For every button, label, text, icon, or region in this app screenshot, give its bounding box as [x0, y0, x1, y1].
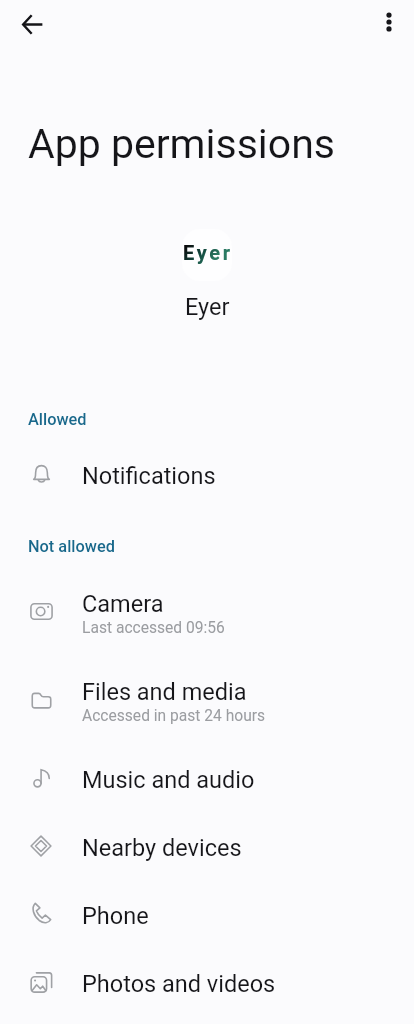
staticText: Nearby devices: [82, 834, 242, 862]
staticText: Last accessed 09:56: [82, 619, 225, 637]
staticText: Photos and videos: [82, 970, 276, 998]
staticText: Eyer: [185, 293, 230, 321]
button[interactable]: Camera: [0, 573, 414, 647]
button[interactable]: Music and audio: [0, 749, 414, 803]
staticText: Music and audio: [82, 766, 255, 794]
button[interactable]: Notifications: [0, 445, 414, 499]
staticText: Phone: [82, 902, 149, 930]
staticText: Camera: [82, 590, 164, 618]
staticText: Accessed in past 24 hours: [82, 707, 266, 725]
button[interactable]: Phone: [0, 885, 414, 939]
button[interactable]: More options: [373, 6, 405, 38]
staticText: Notifications: [82, 462, 216, 490]
staticText: Allowed: [28, 410, 87, 429]
staticText: App permissions: [28, 120, 336, 168]
staticText: Eyer: [183, 241, 232, 264]
button[interactable]: Photos and videos: [0, 953, 414, 1007]
staticText: Not allowed: [28, 537, 115, 556]
button[interactable]: Files and media: [0, 661, 414, 735]
staticText: Files and media: [82, 678, 247, 706]
button[interactable]: Nearby devices: [0, 817, 414, 871]
button[interactable]: Back: [16, 8, 48, 40]
